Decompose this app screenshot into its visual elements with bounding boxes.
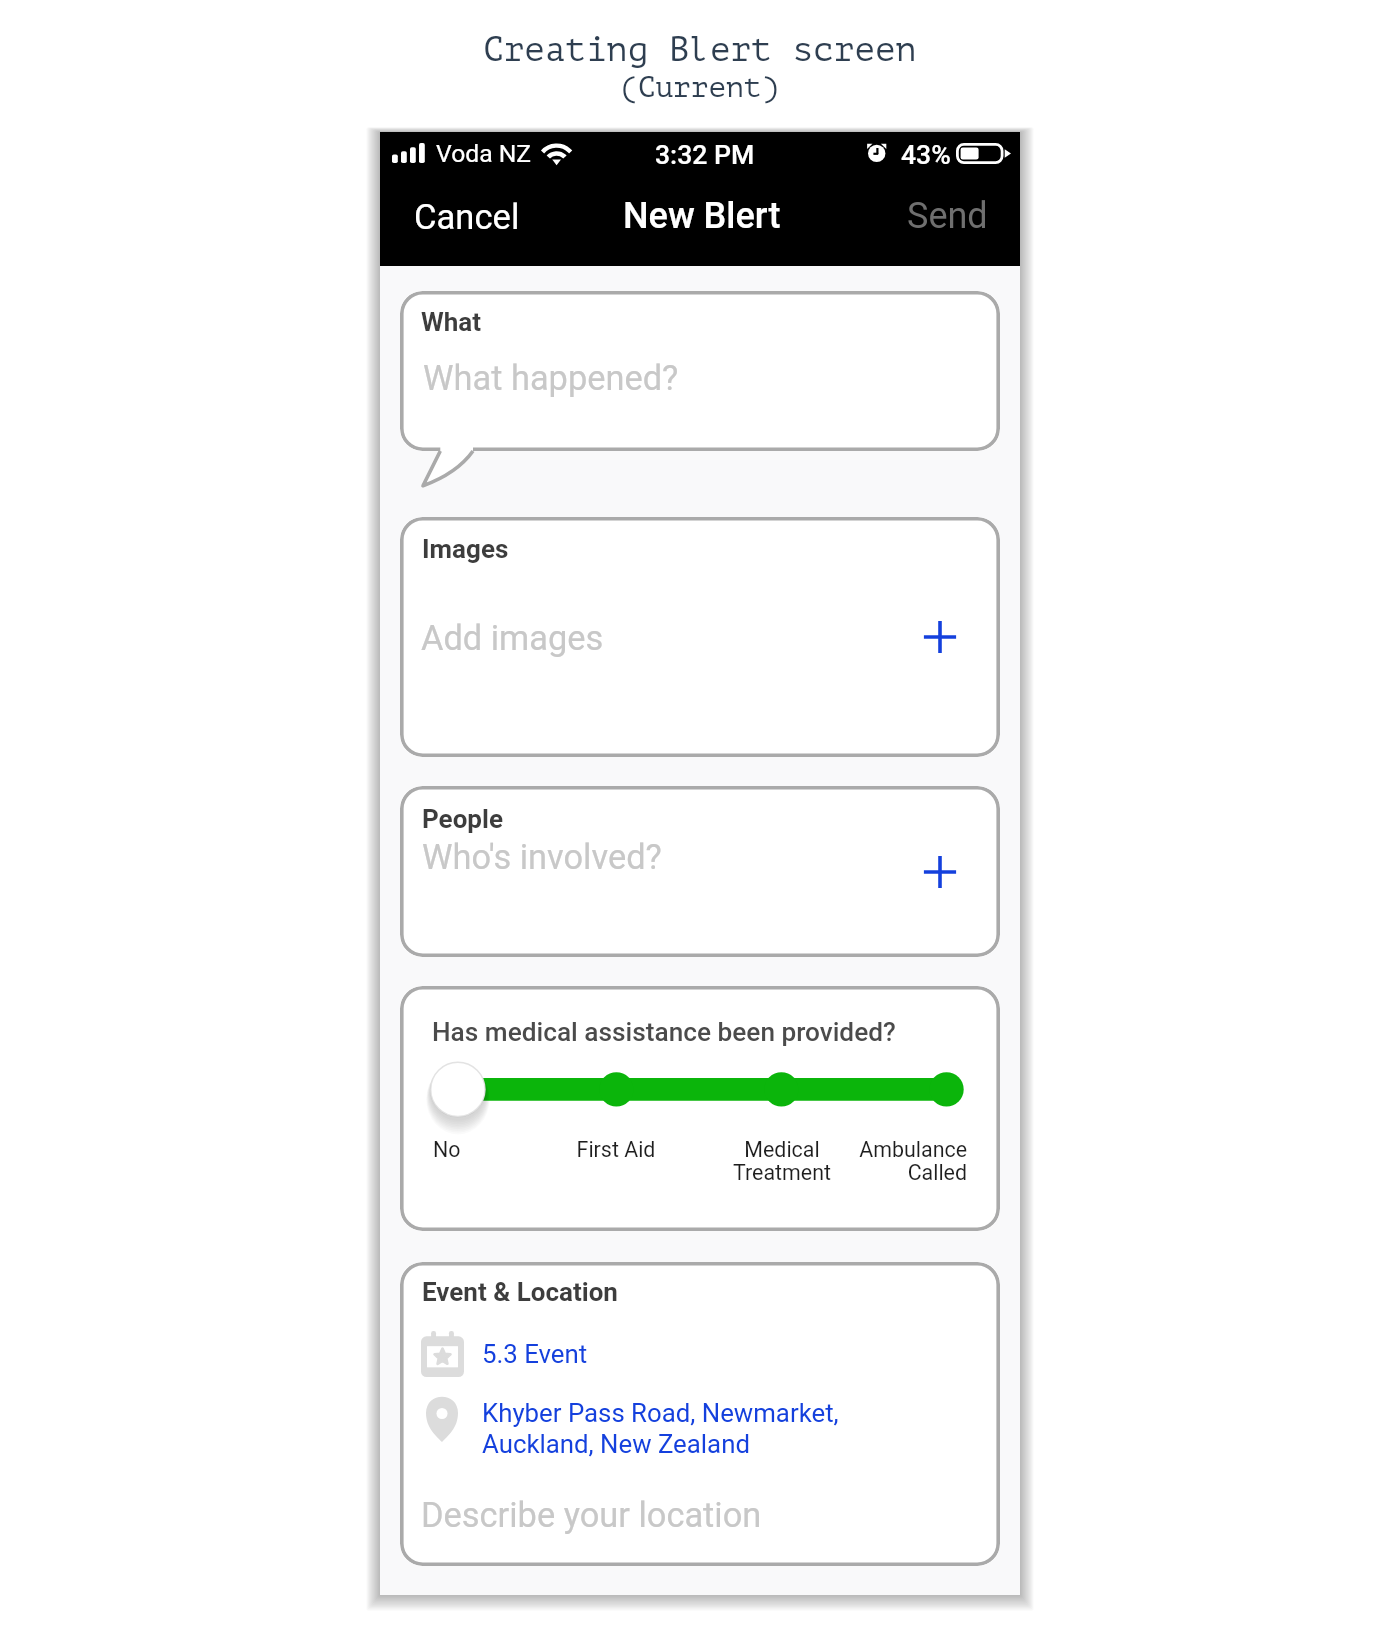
button[interactable]: Add [916, 613, 964, 661]
staticText: Send [907, 195, 988, 237]
button[interactable]: Images [400, 517, 1000, 757]
button[interactable]: Event & Location [400, 1262, 1000, 1566]
button[interactable]: What [400, 291, 1000, 451]
button[interactable]: Send [907, 197, 988, 239]
staticText: Voda NZ [436, 139, 532, 168]
button[interactable]: Medical Treatment [722, 1066, 842, 1176]
staticText: Cancel [414, 197, 520, 238]
button[interactable]: Khyber Pass Road, Newmarket, Auckland, N… [416, 1394, 866, 1466]
button[interactable]: First Aid [556, 1066, 676, 1176]
staticText: Has medical assistance been provided? [432, 1017, 896, 1048]
staticText: Event & Location [422, 1277, 618, 1307]
staticText: Images [422, 534, 509, 564]
staticText: (Current) [620, 71, 780, 104]
staticText: First Aid [556, 1137, 676, 1162]
staticText: Describe your location [421, 1495, 762, 1535]
staticText: 3:32 PM [655, 139, 755, 170]
staticText: 43% [901, 139, 951, 170]
button[interactable]: Has medical assistance been provided? [400, 986, 1000, 1231]
button[interactable]: 5.3 Event [416, 1328, 636, 1380]
button[interactable]: Ambulance Called [827, 1066, 967, 1176]
staticText: Creating Blert screen [483, 31, 917, 70]
button[interactable]: New Blert [623, 197, 781, 239]
staticText: 5.3 Event [482, 1339, 588, 1369]
button[interactable]: No [420, 1066, 500, 1176]
staticText: No [433, 1137, 461, 1162]
staticText: New Blert [623, 195, 781, 237]
staticText: Add images [421, 618, 604, 658]
staticText: People [422, 804, 503, 834]
staticText: Khyber Pass Road, Newmarket, Auckland, N… [482, 1398, 839, 1459]
button[interactable]: Cancel [414, 198, 520, 239]
staticText: Medical Treatment [722, 1137, 842, 1186]
staticText: What [421, 307, 482, 337]
button[interactable]: People [400, 786, 1000, 957]
staticText: Who's involved? [422, 837, 662, 877]
button[interactable]: Add [916, 848, 964, 896]
staticText: Ambulance Called [827, 1137, 967, 1186]
staticText: What happened? [423, 358, 679, 398]
